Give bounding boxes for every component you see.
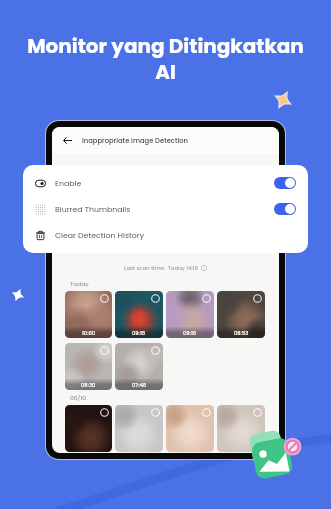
staticText: 09:16: [183, 330, 197, 337]
button[interactable]: Photo 09:18: [115, 291, 163, 338]
staticText: 10:00: [82, 330, 96, 337]
button[interactable]: Clear Detection History: [23, 222, 308, 248]
button[interactable]: Toggle Blurred Thumbnails: [274, 203, 296, 215]
staticText: 07:48: [132, 382, 147, 389]
button[interactable]: Photo 08:53: [217, 291, 265, 338]
staticText: 06/10: [70, 394, 87, 402]
staticText: Monitor yang Ditingkatkan AI: [27, 32, 304, 86]
button[interactable]: Photo 10:00: [65, 291, 112, 338]
button[interactable]: Photo 07:48: [115, 343, 163, 390]
button[interactable]: Photo: [65, 405, 112, 452]
staticText: Clear Detection History: [55, 230, 145, 241]
button[interactable]: Enable: [23, 170, 308, 196]
staticText: Today: [70, 280, 89, 288]
staticText: 09:18: [132, 330, 146, 337]
button[interactable]: Photo 09:16: [166, 291, 214, 338]
button[interactable]: Photo: [166, 405, 214, 452]
staticText: 08:30: [81, 382, 96, 389]
staticText: Enable: [55, 178, 82, 189]
staticText: Blurred Thumbnails: [55, 204, 131, 215]
staticText: Inappropriate Image Detection: [82, 136, 189, 146]
staticText: Last scan time: Today 14:16: [124, 264, 199, 272]
button[interactable]: Photo: [115, 405, 163, 452]
button[interactable]: Photo 08:30: [65, 343, 112, 390]
button[interactable]: Photo: [217, 405, 265, 452]
button[interactable]: Blurred Thumbnails: [23, 196, 308, 222]
button[interactable]: Back: [61, 134, 74, 147]
staticText: 08:53: [234, 330, 249, 337]
button[interactable]: Photo blocker app: [248, 428, 302, 482]
button[interactable]: Toggle Enable: [274, 177, 296, 189]
